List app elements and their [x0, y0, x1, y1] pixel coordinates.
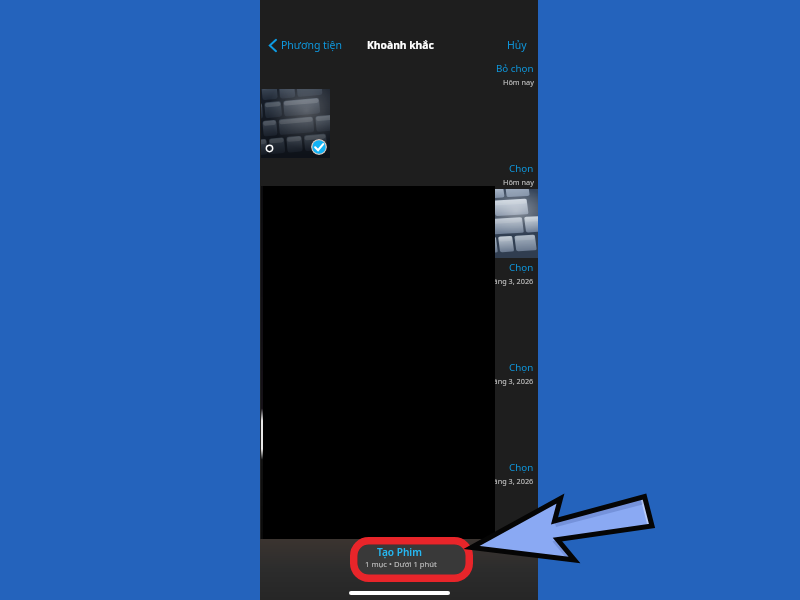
staticText: Chọn — [509, 261, 534, 274]
button[interactable]: Phương tiện — [269, 38, 342, 52]
staticText: Chọn — [509, 361, 534, 374]
staticText: Hôm nay — [503, 77, 534, 87]
button[interactable]: Bỏ chọn — [410, 62, 534, 87]
staticText: Hôm nay — [503, 177, 534, 187]
button[interactable]: Tạo Phim — [358, 545, 468, 578]
button[interactable]: Chọn — [410, 261, 534, 286]
staticText: Tháng 3, 2026 — [485, 376, 534, 386]
staticText: Bỏ chọn — [496, 62, 534, 75]
staticText: Khoành khắc — [367, 38, 434, 52]
staticText: Chọn — [509, 461, 534, 474]
other: Selected — [311, 139, 327, 155]
button[interactable]: Chọn — [410, 461, 534, 486]
button[interactable]: Chọn — [410, 162, 534, 187]
staticText: Tháng 3, 2026 — [485, 476, 534, 486]
other: Pointer arrow — [0, 0, 800, 600]
button[interactable]: Photo — [495, 189, 538, 258]
button[interactable]: Photo, selected — [261, 89, 330, 158]
staticText: Tháng 3, 2026 — [485, 276, 534, 286]
button[interactable]: Chọn — [410, 361, 534, 386]
staticText: Tạo Phim — [377, 545, 422, 559]
staticText: Chọn — [509, 162, 534, 175]
staticText: 1 mục • Dưới 1 phút — [365, 559, 437, 569]
button[interactable]: Hủy — [507, 38, 527, 52]
staticText: Phương tiện — [281, 38, 342, 52]
